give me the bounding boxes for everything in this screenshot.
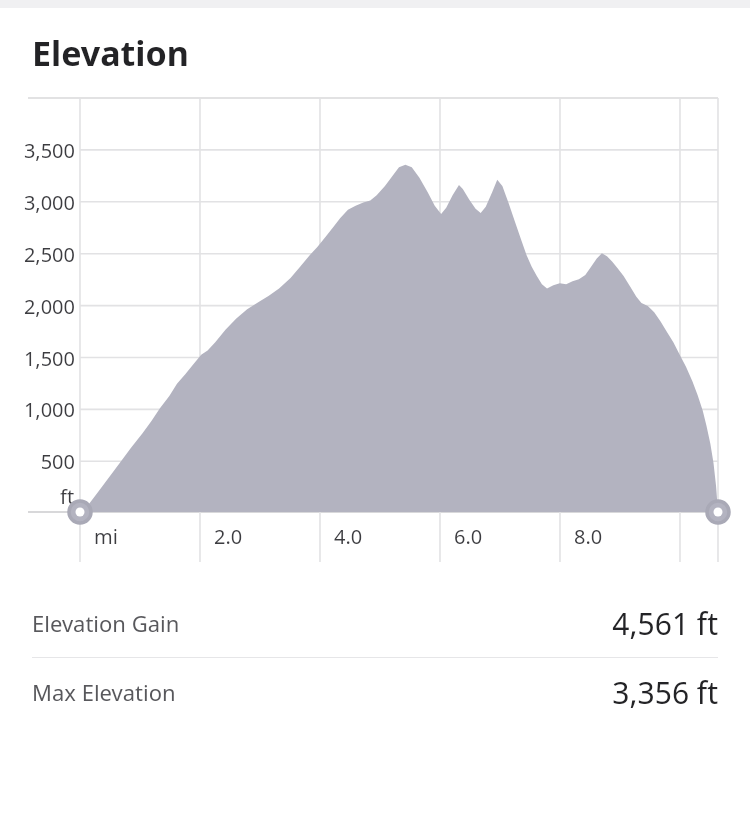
staticText: 500 — [40, 448, 75, 475]
staticText: mi — [94, 523, 118, 550]
staticText: 4,561 ft — [612, 603, 718, 644]
staticText: 1,000 — [23, 396, 75, 423]
staticText: 1,500 — [23, 345, 75, 372]
staticText: 2,000 — [23, 293, 75, 320]
staticText: 2,500 — [23, 241, 75, 268]
button[interactable]: Elevation Gain — [0, 589, 750, 657]
staticText: Max Elevation — [32, 677, 176, 707]
staticText: ft — [60, 483, 75, 510]
staticText: 3,000 — [23, 189, 75, 216]
staticText: 2.0 — [214, 523, 243, 550]
staticText: 3,500 — [23, 137, 75, 164]
staticText: 3,356 ft — [612, 672, 718, 713]
staticText: 4.0 — [334, 523, 363, 550]
staticText: Elevation — [32, 30, 189, 76]
staticText: 6.0 — [454, 523, 483, 550]
staticText: 8.0 — [574, 523, 603, 550]
button[interactable]: Max Elevation — [0, 658, 750, 726]
staticText: Elevation Gain — [32, 608, 180, 638]
